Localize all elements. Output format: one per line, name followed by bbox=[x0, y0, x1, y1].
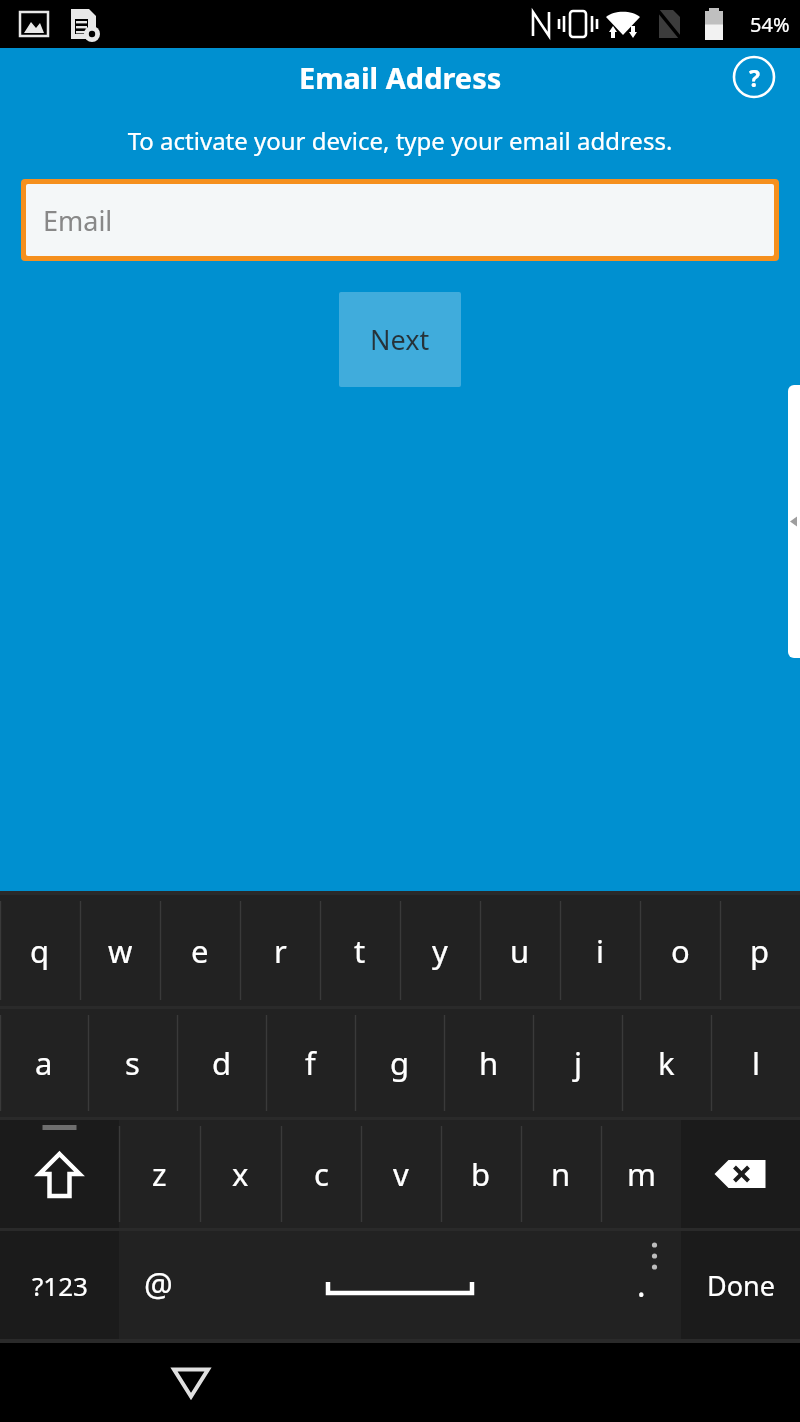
staticText: c bbox=[314, 1153, 329, 1195]
button[interactable]: i bbox=[560, 895, 640, 1006]
staticText: x bbox=[232, 1153, 249, 1195]
staticText: ? bbox=[749, 62, 760, 93]
staticText: l bbox=[752, 1042, 760, 1084]
staticText: p bbox=[750, 930, 770, 972]
button[interactable]: @ bbox=[119, 1231, 198, 1339]
staticText: v bbox=[393, 1153, 409, 1195]
staticText: o bbox=[671, 930, 690, 972]
staticText: r bbox=[274, 930, 287, 972]
button[interactable]: q bbox=[0, 895, 80, 1006]
button[interactable]: Space bbox=[198, 1231, 602, 1339]
button[interactable]: w bbox=[80, 895, 160, 1006]
button[interactable]: x bbox=[200, 1120, 281, 1228]
button[interactable]: Next bbox=[339, 292, 461, 387]
button[interactable]: e bbox=[160, 895, 240, 1006]
staticText: Done bbox=[707, 1267, 775, 1304]
staticText: d bbox=[212, 1042, 232, 1084]
button[interactable]: c bbox=[281, 1120, 361, 1228]
button[interactable]: . bbox=[602, 1231, 681, 1339]
button[interactable]: Open panel bbox=[788, 385, 800, 658]
button[interactable]: r bbox=[240, 895, 320, 1006]
staticText: s bbox=[125, 1042, 140, 1084]
button[interactable]: o bbox=[640, 895, 720, 1006]
button[interactable]: d bbox=[177, 1009, 266, 1117]
button[interactable]: z bbox=[119, 1120, 200, 1228]
button[interactable]: g bbox=[355, 1009, 444, 1117]
staticText: u bbox=[510, 930, 530, 972]
staticText: 54% bbox=[750, 11, 790, 38]
staticText: t bbox=[354, 930, 366, 972]
staticText: Email bbox=[43, 202, 113, 239]
staticText: w bbox=[108, 930, 133, 972]
button[interactable]: Hide keyboard bbox=[151, 1343, 231, 1422]
staticText: g bbox=[390, 1042, 410, 1084]
staticText: q bbox=[30, 930, 50, 972]
button[interactable]: m bbox=[601, 1120, 681, 1228]
staticText: Email Address bbox=[299, 58, 502, 97]
staticText: @ bbox=[144, 1263, 173, 1307]
button[interactable]: u bbox=[480, 895, 560, 1006]
button[interactable]: f bbox=[266, 1009, 355, 1117]
staticText: e bbox=[191, 930, 209, 972]
button[interactable]: a bbox=[0, 1009, 88, 1117]
button[interactable]: Backspace bbox=[681, 1120, 800, 1228]
staticText: i bbox=[596, 930, 604, 972]
button[interactable]: b bbox=[441, 1120, 521, 1228]
button[interactable]: v bbox=[361, 1120, 441, 1228]
button[interactable]: y bbox=[400, 895, 480, 1006]
staticText: f bbox=[305, 1042, 316, 1084]
staticText: a bbox=[35, 1042, 53, 1084]
staticText: b bbox=[471, 1153, 491, 1195]
staticText: To activate your device, type your email… bbox=[0, 124, 800, 157]
staticText: j bbox=[574, 1042, 582, 1084]
staticText: h bbox=[479, 1042, 499, 1084]
staticText: n bbox=[551, 1153, 571, 1195]
button[interactable]: Email bbox=[26, 184, 774, 256]
staticText: k bbox=[658, 1042, 675, 1084]
button[interactable]: s bbox=[88, 1009, 177, 1117]
button[interactable]: Shift bbox=[0, 1120, 119, 1228]
button[interactable]: j bbox=[533, 1009, 622, 1117]
button[interactable]: h bbox=[444, 1009, 533, 1117]
button[interactable]: l bbox=[711, 1009, 800, 1117]
staticText: z bbox=[152, 1153, 167, 1195]
staticText: y bbox=[432, 930, 448, 972]
button[interactable]: p bbox=[720, 895, 800, 1006]
button[interactable]: n bbox=[521, 1120, 601, 1228]
staticText: Next bbox=[370, 321, 430, 358]
button[interactable]: ?123 bbox=[0, 1231, 119, 1339]
staticText: . bbox=[637, 1263, 646, 1307]
staticText: ?123 bbox=[32, 1268, 88, 1303]
button[interactable]: Help bbox=[730, 53, 778, 101]
staticText: m bbox=[627, 1153, 656, 1195]
button[interactable]: k bbox=[622, 1009, 711, 1117]
button[interactable]: Done bbox=[681, 1231, 800, 1339]
button[interactable]: t bbox=[320, 895, 400, 1006]
